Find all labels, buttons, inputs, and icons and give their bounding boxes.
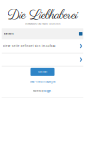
- button[interactable]: Startseite: [30, 68, 54, 76]
- staticText: Startseite: [3, 33, 13, 35]
- staticText: Blogger: [44, 90, 51, 92]
- button[interactable]: [2, 53, 83, 66]
- button[interactable]: Diese Seite befindet sich im Aufbau: [2, 39, 83, 53]
- button[interactable]: Web-Version anzeigen: [30, 80, 55, 84]
- button[interactable]: Startseite: [2, 28, 83, 39]
- staticText: WOHNUNGSBAU UND ANDERE GESCHICHTEN: [25, 23, 60, 25]
- staticText: Startseite: [38, 71, 47, 73]
- staticText: Web-Version anzeigen: [30, 80, 55, 83]
- staticText: Powered by: [32, 90, 43, 92]
- button[interactable]: Blogger: [44, 90, 51, 92]
- staticText: Die Liebhaberei: [7, 7, 77, 24]
- staticText: Diese Seite befindet sich im Aufbau: [3, 44, 56, 48]
